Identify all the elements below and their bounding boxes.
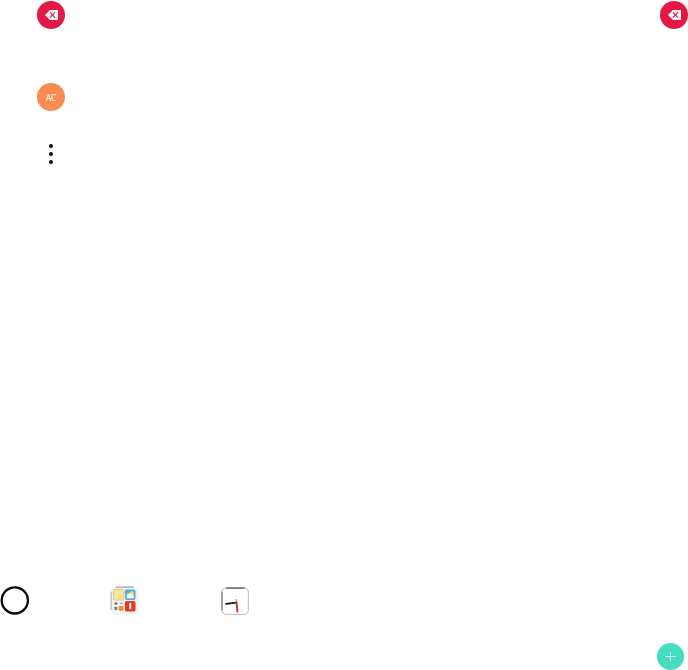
- button[interactable]: Apps: [110, 586, 139, 615]
- button[interactable]: Clock: [220, 586, 250, 616]
- button[interactable]: Add: [657, 643, 684, 670]
- button[interactable]: More options: [39, 138, 63, 170]
- staticText: AC: [46, 92, 57, 103]
- button[interactable]: Backspace: [660, 1, 688, 29]
- button[interactable]: AC: [37, 83, 65, 111]
- button[interactable]: Backspace: [37, 1, 65, 29]
- button[interactable]: Home: [0, 585, 30, 615]
